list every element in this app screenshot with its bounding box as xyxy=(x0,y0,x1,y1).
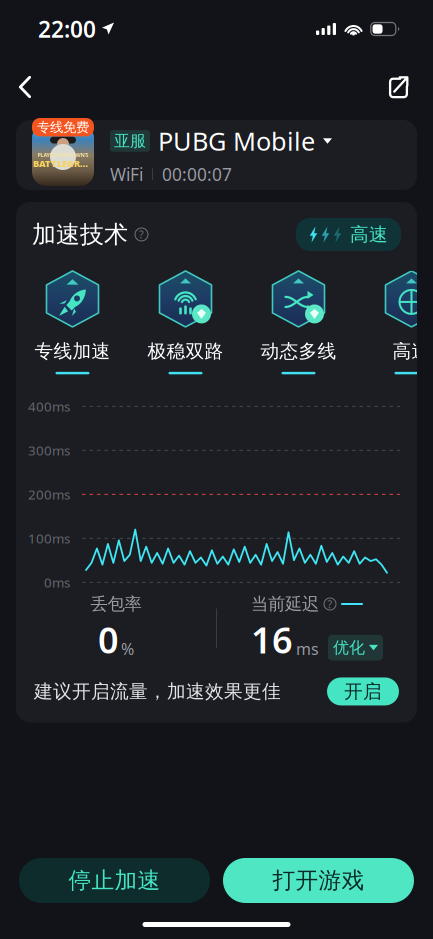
staticText: 00:00:07 xyxy=(162,163,232,186)
staticText: 极稳双路 xyxy=(147,340,223,363)
staticText: PUBG Mobile xyxy=(158,124,315,158)
staticText: 300ms xyxy=(28,441,70,459)
staticText: 0 xyxy=(98,616,119,663)
button[interactable]: Share xyxy=(378,65,419,108)
staticText: 停止加速 xyxy=(68,867,160,894)
staticText: PLAYERUNKNOWN'S xyxy=(37,151,88,159)
staticText: 16 xyxy=(251,616,293,663)
staticText: 0ms xyxy=(44,573,70,591)
staticText: 100ms xyxy=(28,529,70,547)
button[interactable]: 开启 xyxy=(327,677,399,705)
button[interactable]: 打开游戏 xyxy=(223,858,414,903)
staticText: 400ms xyxy=(28,397,70,415)
staticText: 开启 xyxy=(344,680,382,703)
staticText: 打开游戏 xyxy=(272,867,364,894)
staticText: 加速技术 xyxy=(32,220,128,249)
staticText: 当前延迟 xyxy=(251,593,319,615)
staticText: 优化 xyxy=(333,638,365,657)
staticText: BATTLEGROUNDS xyxy=(33,157,93,170)
staticText: 专线加速 xyxy=(34,340,110,363)
staticText: WiFi xyxy=(110,163,143,186)
staticText: ? xyxy=(327,597,332,611)
staticText: 200ms xyxy=(28,485,70,503)
button[interactable]: PLAYERUNKNOWN'S xyxy=(16,120,417,190)
staticText: 丢包率 xyxy=(90,593,141,615)
staticText: ? xyxy=(139,227,144,242)
button[interactable]: 停止加速 xyxy=(19,858,210,903)
staticText: 亚服 xyxy=(114,131,146,151)
staticText: 建议开启流量，加速效果更佳 xyxy=(34,680,281,703)
staticText: 高速 xyxy=(350,223,388,246)
staticText: ms xyxy=(296,638,319,659)
staticText: 动态多线 xyxy=(260,340,336,363)
staticText: 高速 xyxy=(392,340,430,363)
staticText: 专线免费 xyxy=(37,119,89,135)
staticText: 22:00 xyxy=(38,14,96,44)
staticText: % xyxy=(121,638,134,659)
button[interactable]: Back xyxy=(4,64,48,109)
